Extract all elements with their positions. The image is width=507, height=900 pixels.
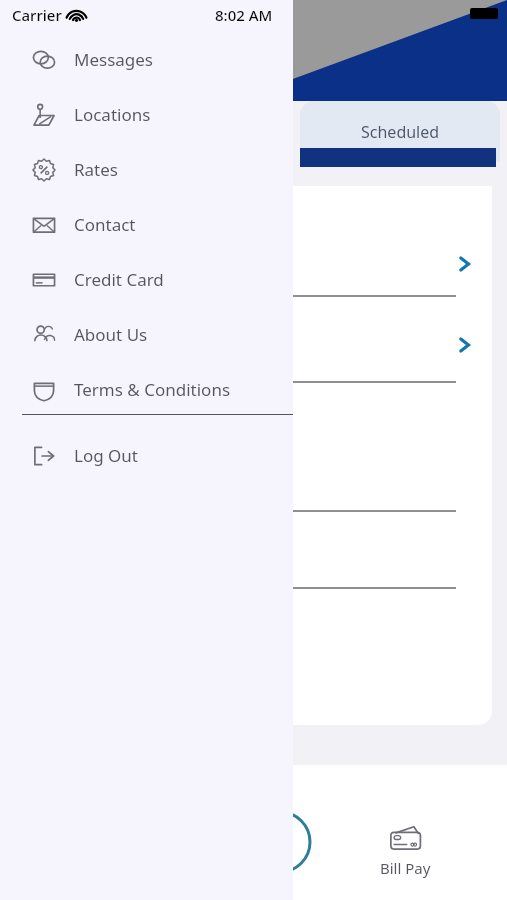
button[interactable]: Scheduled	[300, 101, 500, 162]
staticText: Log Out	[74, 444, 138, 467]
staticText: 8:02 AM	[215, 5, 273, 25]
button[interactable]: Rates	[0, 142, 293, 197]
staticText: Bill Pay	[380, 858, 431, 878]
button[interactable]: Messages	[0, 32, 293, 87]
button[interactable]: Contact	[0, 197, 293, 252]
staticText: Credit Card	[74, 268, 164, 291]
button[interactable]: Open	[456, 256, 472, 272]
staticText: Rates	[74, 158, 118, 181]
staticText: Carrier	[12, 5, 62, 25]
staticText: Locations	[74, 103, 151, 126]
button[interactable]: Locations	[0, 87, 293, 142]
staticText: Messages	[74, 48, 154, 71]
staticText: Contact	[74, 213, 136, 236]
button[interactable]: Credit Card	[0, 252, 293, 307]
staticText: Terms & Conditions	[74, 378, 231, 401]
button[interactable]: Log Out	[0, 428, 293, 483]
button[interactable]: Bill Pay	[380, 825, 431, 878]
staticText: Scheduled	[361, 121, 440, 143]
button[interactable]: Open	[456, 337, 472, 353]
button[interactable]: About Us	[0, 307, 293, 362]
button[interactable]: Terms & Conditions	[0, 362, 293, 417]
staticText: About Us	[74, 323, 148, 346]
